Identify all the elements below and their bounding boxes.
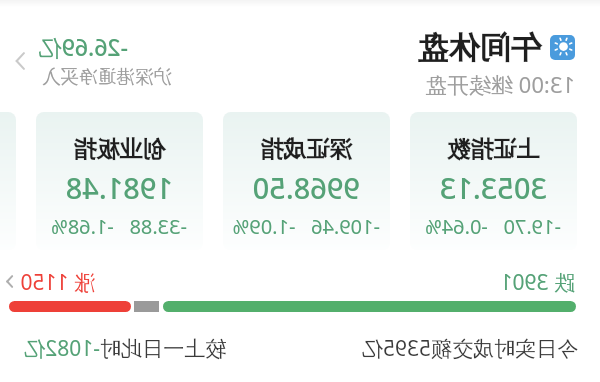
staticText: -33.88 -1.68% <box>51 213 187 240</box>
staticText: 深证成指 <box>260 135 352 164</box>
staticText: 3053.13 <box>439 168 547 207</box>
staticText: -19.70 -0.64% <box>425 213 561 240</box>
staticText: 1981.48 <box>65 168 173 207</box>
staticText: 午间休盘 <box>417 28 541 67</box>
staticText: 跌 3901 <box>500 268 575 297</box>
button[interactable]: 北向资金详情 <box>6 47 34 75</box>
staticText: 9968.50 <box>252 168 360 207</box>
staticText: 创业板指 <box>73 135 165 164</box>
staticText: 上证指数 <box>447 135 539 164</box>
button[interactable]: 上证指数 <box>410 112 577 250</box>
button[interactable]: 创业板指 <box>36 112 203 250</box>
staticText: 涨 1150 <box>20 268 95 297</box>
staticText: 较上一日此时-1082亿 <box>24 334 226 363</box>
button[interactable]: 科创50 <box>0 112 16 250</box>
staticText: -109.46 -1.09% <box>232 213 380 240</box>
staticText: 13:00 继续开盘 <box>425 69 575 99</box>
staticText: -26.69亿 <box>38 31 128 62</box>
button[interactable]: 天气 <box>550 35 575 60</box>
staticText: 今日实时成交额5395亿 <box>361 334 578 363</box>
button[interactable]: 深证成指 <box>223 112 390 250</box>
staticText: 沪深港通净买入 <box>41 65 172 88</box>
button[interactable]: 涨跌家数详情 <box>0 272 19 291</box>
